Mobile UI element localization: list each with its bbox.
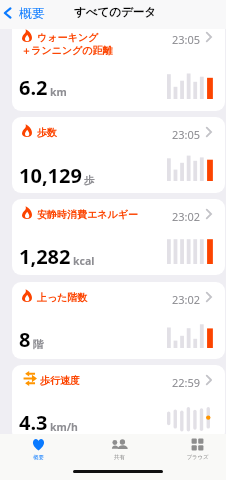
staticText: kcal	[73, 254, 95, 268]
staticText: 概要	[33, 454, 44, 461]
staticText: 階	[33, 338, 44, 351]
button[interactable]: 概要	[1, 3, 49, 25]
staticText: ブラウズ	[186, 454, 209, 461]
staticText: km	[50, 85, 67, 99]
staticText: 8	[19, 326, 31, 353]
staticText: 歩数	[37, 126, 57, 139]
staticText: 概要	[19, 5, 45, 21]
staticText: 1,282	[19, 243, 71, 270]
staticText: 23:02	[172, 292, 201, 307]
staticText: 10,129	[19, 162, 82, 189]
staticText: 23:02	[172, 209, 201, 224]
staticText: 4.3	[19, 409, 48, 436]
button[interactable]: 歩行速度	[12, 365, 225, 441]
staticText: 23:05	[172, 32, 201, 47]
button[interactable]: 共有	[99, 438, 139, 461]
button[interactable]: ウォーキング	[12, 29, 225, 111]
staticText: 22:59	[172, 375, 201, 390]
button[interactable]: 上った階数	[12, 282, 225, 359]
staticText: 上った階数	[37, 291, 88, 304]
staticText: 共有	[114, 454, 125, 461]
staticText: 安静時消費エネルギー	[37, 208, 138, 221]
staticText: 歩	[84, 174, 95, 187]
button[interactable]: 概要	[18, 438, 58, 461]
staticText: ウォーキング	[37, 31, 99, 44]
staticText: すべてのデータ	[74, 5, 157, 19]
button[interactable]: ブラウズ	[177, 438, 217, 461]
staticText: 歩行速度	[40, 374, 80, 387]
staticText: ＋ランニングの距離	[21, 44, 113, 57]
button[interactable]: 安静時消費エネルギー	[12, 199, 225, 275]
staticText: 6.2	[19, 74, 48, 101]
staticText: km/h	[50, 420, 78, 434]
staticText: 23:05	[172, 127, 201, 142]
button[interactable]: 歩数	[12, 117, 225, 193]
